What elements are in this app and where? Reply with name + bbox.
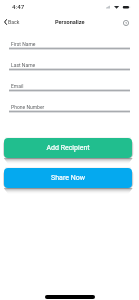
staticText: ? <box>125 21 127 26</box>
button[interactable]: Help <box>121 18 131 28</box>
staticText: First Name <box>11 41 36 47</box>
staticText: 4:47 <box>12 3 25 10</box>
staticText: Add Recipient <box>46 144 90 152</box>
button[interactable]: Add Recipient <box>4 138 132 158</box>
staticText: Share Now <box>51 174 85 182</box>
staticText: Personalize <box>55 19 85 26</box>
staticText: Phone Number <box>11 104 45 110</box>
button[interactable]: Share Now <box>4 168 132 188</box>
staticText: Last Name <box>11 62 36 68</box>
staticText: Back <box>8 19 20 25</box>
button[interactable]: Back <box>0 17 26 27</box>
staticText: Email <box>11 83 24 89</box>
